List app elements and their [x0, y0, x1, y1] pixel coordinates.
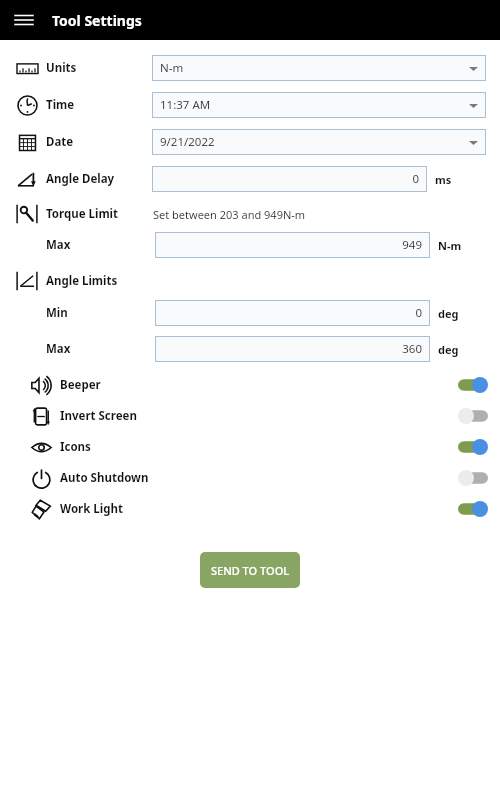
- button[interactable]: 360: [155, 336, 430, 362]
- button[interactable]: 0: [152, 166, 427, 192]
- button[interactable]: SEND TO TOOL: [200, 552, 300, 588]
- staticText: Angle Limits: [46, 273, 118, 289]
- staticText: Time: [46, 97, 75, 113]
- button[interactable]: 949: [155, 232, 430, 258]
- staticText: Set between 203 and 949N-m: [153, 207, 306, 222]
- button[interactable]: Beeper: [0, 369, 500, 400]
- staticText: Max: [46, 237, 71, 253]
- staticText: Units: [46, 60, 77, 76]
- staticText: deg: [438, 342, 459, 357]
- staticText: SEND TO TOOL: [211, 563, 290, 578]
- staticText: Min: [46, 305, 68, 321]
- button[interactable]: Auto Shutdown: [0, 462, 500, 493]
- staticText: 9/21/2022: [160, 134, 215, 150]
- button[interactable]: Open navigation menu: [8, 4, 40, 36]
- staticText: ms: [435, 172, 452, 187]
- staticText: Date: [46, 134, 74, 150]
- staticText: Angle Delay: [46, 171, 115, 187]
- staticText: Auto Shutdown: [60, 470, 149, 486]
- staticText: Beeper: [60, 377, 101, 393]
- staticText: Invert Screen: [60, 408, 137, 424]
- button[interactable]: Icons: [0, 431, 500, 462]
- button[interactable]: 9/21/2022: [152, 129, 486, 155]
- staticText: 360: [402, 341, 422, 357]
- staticText: N-m: [160, 60, 184, 76]
- staticText: 0: [412, 171, 419, 187]
- staticText: Torque Limit: [46, 206, 119, 222]
- staticText: Icons: [60, 439, 91, 455]
- staticText: Work Light: [60, 501, 123, 517]
- staticText: deg: [438, 306, 459, 321]
- button[interactable]: 0: [155, 300, 430, 326]
- button[interactable]: Invert Screen: [0, 400, 500, 431]
- staticText: 11:37 AM: [160, 97, 211, 113]
- button[interactable]: Work Light: [0, 493, 500, 524]
- staticText: Max: [46, 341, 71, 357]
- staticText: Tool Settings: [52, 11, 142, 30]
- button[interactable]: N-m: [152, 55, 486, 81]
- button[interactable]: 11:37 AM: [152, 92, 486, 118]
- staticText: 949: [402, 237, 422, 253]
- staticText: N-m: [438, 238, 462, 253]
- staticText: 0: [415, 305, 422, 321]
